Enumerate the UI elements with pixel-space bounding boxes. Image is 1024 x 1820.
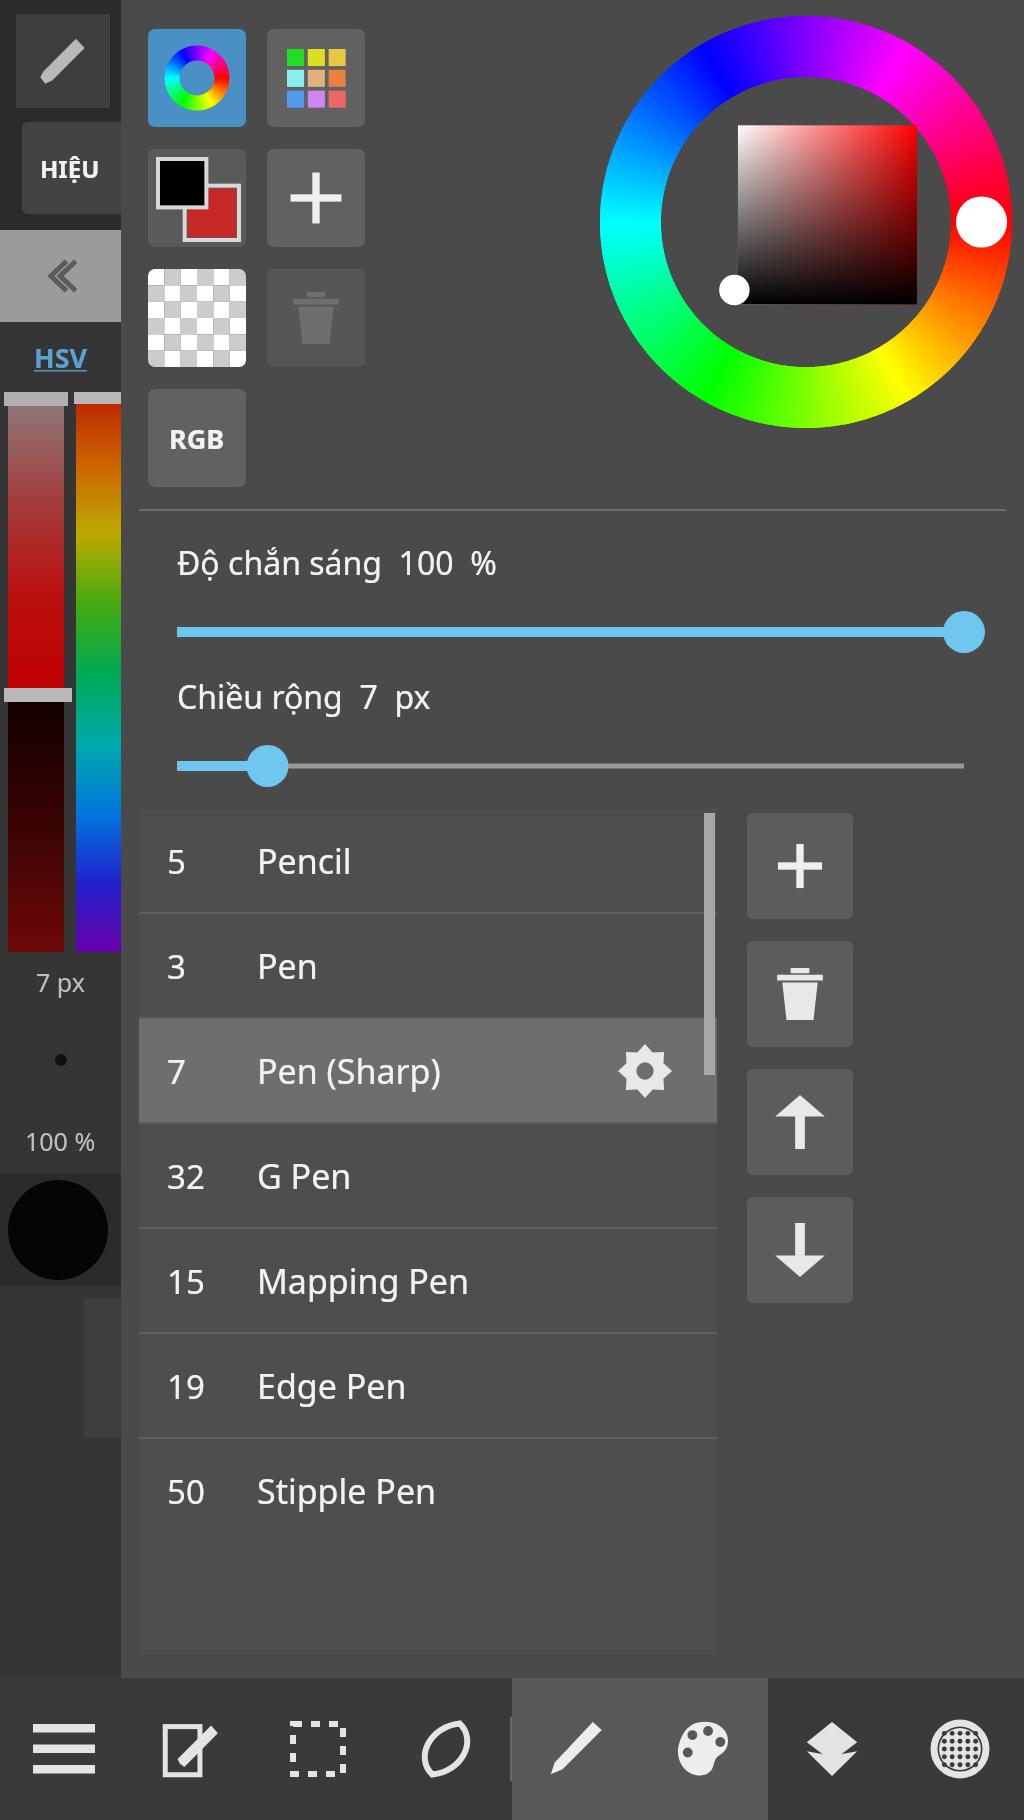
button[interactable]: More: [896, 1678, 1024, 1820]
button[interactable]: Color tool: [267, 29, 365, 127]
button[interactable]: Move up: [747, 1069, 853, 1175]
staticText: RGB: [169, 420, 225, 457]
staticText: Pen: [257, 943, 318, 989]
staticText: 7: [167, 1049, 186, 1094]
staticText: HIỆU: [40, 152, 100, 185]
staticText: Stipple Pen: [257, 1468, 437, 1514]
button[interactable]: Rotate: [382, 1678, 510, 1820]
button[interactable]: 19: [139, 1334, 717, 1437]
button[interactable]: RGB: [148, 389, 246, 487]
button[interactable]: Color tool: [148, 149, 246, 247]
staticText: 50: [167, 1469, 205, 1514]
staticText: 19: [167, 1364, 205, 1409]
button[interactable]: [177, 749, 964, 783]
button[interactable]: Current color: [8, 1180, 108, 1280]
staticText: 7 px: [36, 965, 85, 999]
staticText: 15: [167, 1259, 205, 1304]
button[interactable]: Color tool: [148, 269, 246, 367]
button[interactable]: HIỆU: [22, 122, 121, 214]
button[interactable]: Select: [254, 1678, 382, 1820]
button[interactable]: Color tool: [148, 29, 246, 127]
button[interactable]: Brush settings: [617, 1043, 673, 1099]
staticText: Edge Pen: [257, 1363, 407, 1409]
staticText: 100 %: [25, 1124, 96, 1158]
button[interactable]: Add brush: [747, 813, 853, 919]
button[interactable]: 5: [139, 809, 717, 912]
staticText: 5: [167, 839, 186, 884]
button[interactable]: HSV: [0, 322, 121, 392]
button[interactable]: 50: [139, 1439, 717, 1542]
staticText: Pen (Sharp): [257, 1048, 441, 1094]
button[interactable]: Collapse panel: [0, 230, 121, 322]
button[interactable]: 3: [139, 914, 717, 1017]
button[interactable]: 7: [139, 1019, 717, 1122]
button[interactable]: 32: [139, 1124, 717, 1227]
button[interactable]: Menu: [0, 1678, 127, 1820]
button[interactable]: Delete brush: [747, 941, 853, 1047]
button[interactable]: Color tool: [267, 149, 365, 247]
staticText: Pencil: [257, 838, 352, 884]
staticText: HSV: [34, 339, 88, 376]
staticText: Độ chắn sáng 100 %: [177, 541, 497, 585]
button[interactable]: Color tool: [267, 269, 365, 367]
staticText: Mapping Pen: [257, 1258, 470, 1304]
button[interactable]: [177, 615, 964, 649]
button[interactable]: Pencil tool: [16, 14, 110, 108]
button[interactable]: Palette: [640, 1678, 768, 1820]
button[interactable]: Brush: [512, 1678, 640, 1820]
button[interactable]: 15: [139, 1229, 717, 1332]
staticText: G Pen: [257, 1153, 352, 1199]
staticText: 32: [167, 1154, 205, 1199]
staticText: 3: [167, 944, 186, 989]
staticText: Chiều rộng 7 px: [177, 675, 431, 719]
button[interactable]: Move down: [747, 1197, 853, 1303]
button[interactable]: Edit: [127, 1678, 254, 1820]
button[interactable]: Layers: [768, 1678, 896, 1820]
